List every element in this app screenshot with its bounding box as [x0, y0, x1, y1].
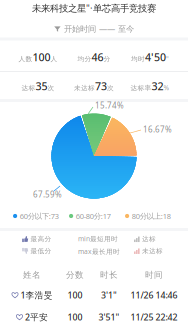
staticText: 未达标	[74, 84, 95, 92]
staticText: max最长用时	[78, 247, 120, 256]
staticText: 人	[50, 55, 57, 63]
staticText: min最短用时	[78, 234, 118, 243]
staticText: 达标	[21, 84, 35, 92]
staticText: 未来科技之星"·单芯高手竞技赛	[32, 2, 156, 14]
staticText: 均分	[77, 55, 91, 63]
staticText: %	[163, 83, 169, 92]
staticText: 时长	[100, 270, 118, 280]
staticText: 最高分	[30, 235, 51, 243]
staticText: 35	[35, 79, 47, 93]
staticText: 11/26 14:46	[130, 289, 177, 301]
staticText: 1李浩旻	[20, 289, 52, 301]
button[interactable]: 2平安	[0, 306, 176, 328]
staticText: 11/25 22:42	[130, 311, 177, 323]
staticText: 次	[107, 84, 114, 92]
staticText: "	[166, 54, 169, 63]
staticText: 60分以下:73	[20, 211, 59, 221]
staticText: 100	[67, 289, 82, 301]
staticText: 达标率	[130, 84, 151, 92]
staticText: 73	[95, 79, 107, 93]
staticText: 分数	[66, 270, 84, 280]
staticText: 分	[103, 55, 110, 63]
staticText: 4'50	[145, 50, 166, 64]
staticText: 姓名	[23, 270, 41, 280]
staticText: 达标	[142, 235, 156, 243]
staticText: 均时	[131, 55, 145, 63]
staticText: 100	[32, 50, 50, 64]
staticText: 80分以上:18	[132, 211, 171, 221]
staticText: 16.67%	[143, 124, 172, 135]
staticText: 3'1"	[101, 289, 117, 301]
staticText: 时间	[145, 270, 163, 280]
button[interactable]: 1李浩旻	[0, 284, 176, 306]
staticText: 开始时间	[64, 24, 96, 34]
staticText: 最低分	[30, 247, 51, 255]
staticText: 3'51"	[98, 311, 119, 323]
staticText: 60-80分:17	[76, 211, 111, 221]
button[interactable]: 开始时间	[0, 21, 188, 37]
staticText: 至今	[118, 24, 134, 34]
staticText: ——	[99, 23, 115, 35]
staticText: 15.74%	[95, 100, 124, 111]
staticText: 32	[151, 79, 163, 93]
staticText: 人数	[18, 55, 32, 63]
staticText: 67.59%	[33, 189, 62, 200]
staticText: 次	[47, 84, 54, 92]
staticText: 46	[91, 50, 103, 64]
staticText: 100	[67, 311, 82, 323]
staticText: 未达标	[142, 247, 163, 255]
staticText: 2平安	[25, 311, 48, 323]
